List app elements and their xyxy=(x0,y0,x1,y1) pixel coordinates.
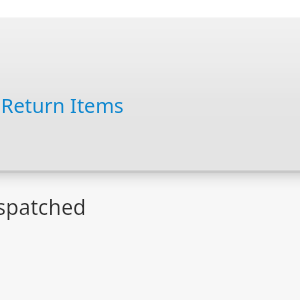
button[interactable]: Return Items xyxy=(0,87,129,123)
staticText: Return Items xyxy=(1,92,124,119)
staticText: Dispatched xyxy=(0,193,86,222)
